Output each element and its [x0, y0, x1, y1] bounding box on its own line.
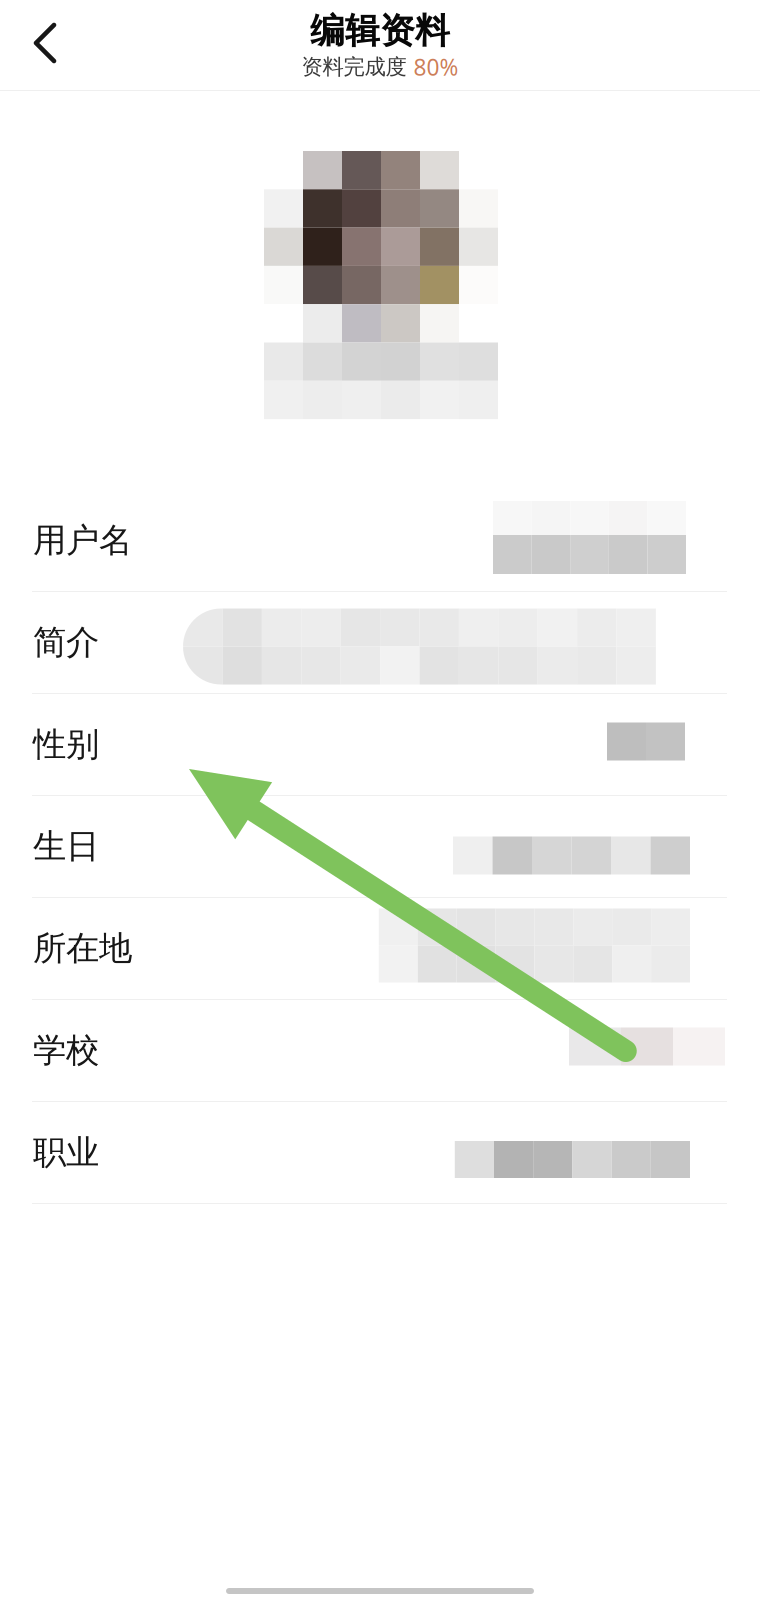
- button[interactable]: Back: [6, 3, 84, 83]
- staticText: 学校: [33, 1030, 99, 1071]
- button[interactable]: 用户名: [0, 490, 760, 591]
- staticText: 职业: [33, 1132, 99, 1173]
- button[interactable]: 性别: [0, 694, 760, 795]
- button[interactable]: 简介: [0, 592, 760, 693]
- staticText: 性别: [33, 724, 99, 765]
- staticText: 所在地: [33, 928, 132, 969]
- button[interactable]: 职业: [0, 1102, 760, 1203]
- staticText: 用户名: [33, 520, 132, 561]
- button[interactable]: 学校: [0, 1000, 760, 1101]
- staticText: 编辑资料: [310, 10, 450, 52]
- staticText: 80%: [413, 52, 458, 82]
- staticText: 简介: [33, 622, 99, 663]
- staticText: 生日: [33, 826, 99, 867]
- button[interactable]: 所在地: [0, 898, 760, 999]
- button[interactable]: 生日: [0, 796, 760, 897]
- staticText: 资料完成度: [301, 54, 406, 80]
